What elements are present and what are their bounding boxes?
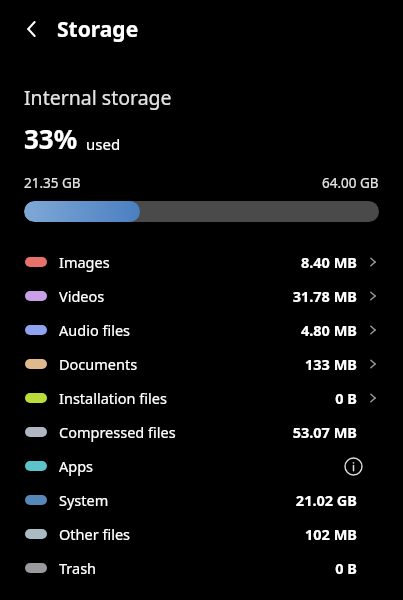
staticText: 0 B — [335, 388, 357, 408]
staticText: 102 MB — [305, 524, 357, 544]
staticText: Apps — [59, 456, 94, 476]
staticText: used — [86, 134, 121, 154]
staticText: Images — [59, 252, 110, 272]
staticText: 4.80 MB — [300, 320, 357, 340]
staticText: Videos — [59, 286, 105, 306]
button[interactable]: Installation files — [0, 381, 403, 415]
button[interactable]: System — [0, 483, 403, 517]
staticText: Storage — [57, 15, 139, 44]
staticText: 133 MB — [305, 354, 357, 374]
button[interactable]: Apps — [0, 449, 403, 483]
staticText: System — [59, 490, 109, 510]
button[interactable]: Other files — [0, 517, 403, 551]
staticText: 0 B — [335, 558, 357, 578]
button[interactable]: Images — [0, 245, 403, 279]
staticText: Other files — [59, 524, 131, 544]
staticText: 53.07 MB — [292, 422, 357, 442]
staticText: 33% — [24, 121, 78, 156]
staticText: Audio files — [59, 320, 131, 340]
button[interactable]: Apps storage info — [340, 453, 366, 479]
staticText: 8.40 MB — [300, 252, 357, 272]
staticText: Documents — [59, 354, 138, 374]
staticText: Compressed files — [59, 422, 176, 442]
staticText: Installation files — [59, 388, 167, 408]
staticText: 21.02 GB — [295, 490, 357, 510]
button[interactable]: Audio files — [0, 313, 403, 347]
button[interactable]: Back — [10, 7, 54, 51]
staticText: 21.35 GB — [24, 174, 81, 192]
button[interactable]: Documents — [0, 347, 403, 381]
button[interactable]: Trash — [0, 551, 403, 585]
button[interactable]: Compressed files — [0, 415, 403, 449]
staticText: 64.00 GB — [322, 174, 379, 192]
staticText: 31.78 MB — [292, 286, 357, 306]
staticText: Trash — [59, 558, 97, 578]
button[interactable]: Videos — [0, 279, 403, 313]
staticText: Internal storage — [24, 84, 172, 111]
